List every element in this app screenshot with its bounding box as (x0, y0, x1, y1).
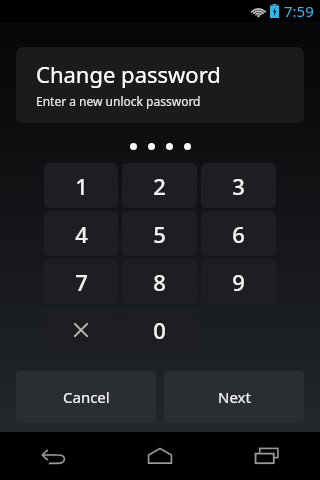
button[interactable]: Next (164, 371, 304, 423)
staticText: 9 (232, 267, 245, 297)
staticText: 4 (75, 219, 88, 249)
staticText: 7 (75, 267, 88, 297)
other: Delete (72, 321, 90, 339)
button[interactable]: Recent apps (213, 432, 320, 480)
staticText: 5 (153, 219, 166, 249)
button[interactable]: 4 (44, 211, 118, 256)
staticText: Cancel (63, 387, 110, 407)
button[interactable]: 9 (201, 259, 276, 304)
staticText: Next (218, 387, 251, 407)
button[interactable]: Home (106, 432, 213, 480)
button[interactable]: Delete (44, 307, 118, 352)
button[interactable]: 1 (44, 163, 118, 208)
staticText: 1 (75, 171, 88, 201)
staticText: Enter a new unlock password (36, 93, 201, 109)
staticText: 0 (153, 315, 166, 345)
staticText: 7:59 (284, 1, 314, 21)
button[interactable]: 8 (122, 259, 197, 304)
button[interactable]: 3 (201, 163, 276, 208)
button[interactable]: 5 (122, 211, 197, 256)
staticText: 2 (153, 171, 166, 201)
staticText: Change password (36, 59, 221, 89)
staticText: 8 (153, 267, 166, 297)
button[interactable]: 7 (44, 259, 118, 304)
staticText: 6 (232, 219, 245, 249)
button[interactable]: Cancel (16, 371, 156, 423)
button[interactable]: 6 (201, 211, 276, 256)
button[interactable]: Back (0, 432, 106, 480)
button[interactable]: 2 (122, 163, 197, 208)
staticText: 3 (232, 171, 245, 201)
button[interactable]: 0 (122, 307, 197, 352)
